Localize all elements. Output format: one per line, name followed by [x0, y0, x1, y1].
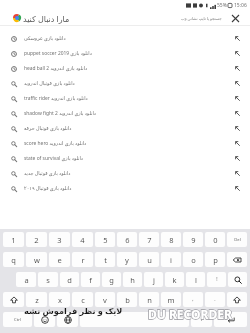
- staticText: z: [35, 295, 39, 305]
- button[interactable]: j: [144, 272, 163, 287]
- button[interactable]: a: [16, 272, 36, 287]
- button[interactable]: r: [72, 252, 93, 267]
- button[interactable]: 9: [183, 232, 203, 247]
- button[interactable]: e: [49, 252, 70, 267]
- button[interactable]: m: [161, 292, 181, 307]
- staticText: دانلود بازی فوتبال جدید: [24, 170, 71, 177]
- button[interactable]: k: [165, 272, 184, 287]
- staticText: m: [167, 295, 175, 305]
- button[interactable]: state of survival دانلود بازی: [0, 151, 250, 166]
- button[interactable]: Language: [57, 312, 78, 327]
- staticText: 4: [80, 235, 85, 245]
- staticText: 8: [169, 235, 174, 245]
- button[interactable]: Enter: [214, 312, 247, 327]
- button[interactable]: i: [161, 252, 181, 267]
- button[interactable]: d: [60, 272, 79, 287]
- button[interactable]: Emoji: [34, 312, 55, 327]
- button[interactable]: /: [191, 312, 212, 327]
- staticText: traffic rider دانلود بازی اندروید: [24, 95, 88, 102]
- button[interactable]: Ctrl: [3, 312, 32, 327]
- staticText: head ball 2 دانلود بازی اندروید: [24, 65, 88, 72]
- button[interactable]: o: [183, 252, 203, 267]
- staticText: state of survival دانلود بازی: [24, 155, 83, 162]
- button[interactable]: 4: [72, 232, 93, 247]
- staticText: 15:06: [234, 2, 247, 9]
- button[interactable]: z: [26, 292, 47, 307]
- staticText: 0: [213, 235, 218, 245]
- button[interactable]: y: [117, 252, 137, 267]
- staticText: b: [125, 295, 130, 305]
- staticText: دانلود بازی عروسکی: [24, 35, 66, 42]
- staticText: جستجو یا تایپ نشانی وب: [181, 16, 222, 21]
- button[interactable]: shadow fight 2 دانلود بازی اندروید: [0, 106, 250, 121]
- staticText: 3: [57, 235, 62, 245]
- button[interactable]: w: [26, 252, 47, 267]
- staticText: n: [147, 295, 152, 305]
- button[interactable]: score hero دانلود بازی اندروید: [0, 136, 250, 151]
- button[interactable]: دانلود بازی فوتبال جدید: [0, 166, 250, 181]
- button[interactable]: 2: [26, 232, 47, 247]
- button[interactable]: 3: [49, 232, 70, 247]
- button[interactable]: 1: [3, 232, 24, 247]
- button[interactable]: traffic rider دانلود بازی اندروید: [0, 91, 250, 106]
- staticText: 1: [11, 235, 16, 245]
- button[interactable]: ,: [183, 292, 203, 307]
- button[interactable]: 6: [117, 232, 137, 247]
- staticText: .: [214, 296, 216, 303]
- button[interactable]: دانلود بازی عروسکی: [0, 31, 250, 46]
- staticText: u: [147, 255, 152, 265]
- staticText: d: [67, 275, 72, 285]
- staticText: 55%: [217, 2, 227, 9]
- button[interactable]: Shift: [3, 292, 24, 307]
- staticText: DU RECORDER: [148, 306, 232, 322]
- button[interactable]: l: [186, 272, 205, 287]
- button[interactable]: 0: [205, 232, 225, 247]
- button[interactable]: 5: [95, 232, 115, 247]
- staticText: دانلود بازی فوتبال ۲۰۱۹: [24, 185, 72, 192]
- button[interactable]: x: [49, 292, 70, 307]
- button[interactable]: دانلود بازی فوتبال ۲۰۱۹: [0, 181, 250, 196]
- staticText: j: [153, 275, 155, 285]
- button[interactable]: Del: [227, 232, 247, 247]
- button[interactable]: g: [102, 272, 121, 287]
- button[interactable]: f: [81, 272, 100, 287]
- button[interactable]: .: [205, 292, 225, 307]
- staticText: r: [81, 255, 85, 265]
- button[interactable]: Backspace: [227, 252, 247, 267]
- button[interactable]: v: [95, 292, 115, 307]
- button[interactable]: [80, 312, 189, 327]
- staticText: v: [103, 295, 107, 305]
- button[interactable]: s: [38, 272, 58, 287]
- button[interactable]: Close: [229, 12, 242, 25]
- button[interactable]: 8: [161, 232, 181, 247]
- staticText: x: [58, 295, 62, 305]
- button[interactable]: head ball 2 دانلود بازی اندروید: [0, 61, 250, 76]
- button[interactable]: h: [123, 272, 142, 287]
- staticText: 5: [103, 235, 108, 245]
- staticText: score hero دانلود بازی اندروید: [24, 140, 87, 147]
- button[interactable]: دانلود بازی فوتبال حرفه: [0, 121, 250, 136]
- staticText: puppet soccer 2019 دانلود بازی: [24, 50, 92, 57]
- staticText: 2: [34, 235, 39, 245]
- staticText: q: [11, 255, 16, 265]
- button[interactable]: 7: [139, 232, 159, 247]
- button[interactable]: Shift: [227, 292, 247, 307]
- button[interactable]: دانلود بازی فوتبال اندروید: [0, 76, 250, 91]
- button[interactable]: !: [207, 272, 226, 287]
- button[interactable]: p: [205, 252, 225, 267]
- button[interactable]: u: [139, 252, 159, 267]
- button[interactable]: b: [117, 292, 137, 307]
- button[interactable]: puppet soccer 2019 دانلود بازی: [0, 46, 250, 61]
- staticText: دانلود بازی فوتبال حرفه: [24, 125, 72, 132]
- button[interactable]: c: [72, 292, 93, 307]
- button[interactable]: Search: [228, 272, 247, 287]
- button[interactable]: q: [3, 252, 24, 267]
- staticText: 9: [191, 235, 196, 245]
- staticText: y: [125, 255, 129, 265]
- staticText: h: [130, 275, 135, 285]
- staticText: s: [46, 275, 50, 285]
- staticText: c: [81, 295, 85, 305]
- button[interactable]: t: [95, 252, 115, 267]
- button[interactable]: n: [139, 292, 159, 307]
- staticText: !: [216, 276, 218, 283]
